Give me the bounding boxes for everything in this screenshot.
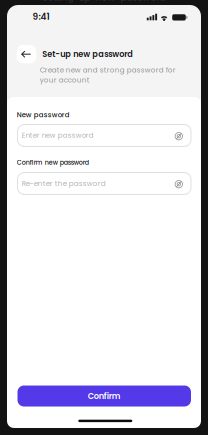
button[interactable]: Enter new password bbox=[17, 124, 191, 146]
staticText: setting-up-new-password bbox=[42, 0, 165, 4]
staticText: Confirm bbox=[88, 390, 121, 402]
staticText: Create new and strong password for your … bbox=[40, 65, 176, 85]
button[interactable]: Show password bbox=[173, 178, 185, 190]
staticText: Set-up new password bbox=[42, 48, 133, 60]
staticText: Re-enter the password bbox=[22, 178, 106, 188]
button[interactable]: Show password bbox=[173, 130, 185, 142]
button[interactable]: Confirm bbox=[17, 385, 191, 406]
staticText: Enter new password bbox=[22, 130, 94, 140]
button[interactable]: Re-enter the password bbox=[17, 172, 191, 194]
staticText: 9:41 bbox=[32, 10, 49, 23]
button[interactable]: Back bbox=[17, 45, 36, 63]
staticText: Confirm new password bbox=[17, 158, 89, 167]
staticText: New password bbox=[17, 110, 70, 120]
